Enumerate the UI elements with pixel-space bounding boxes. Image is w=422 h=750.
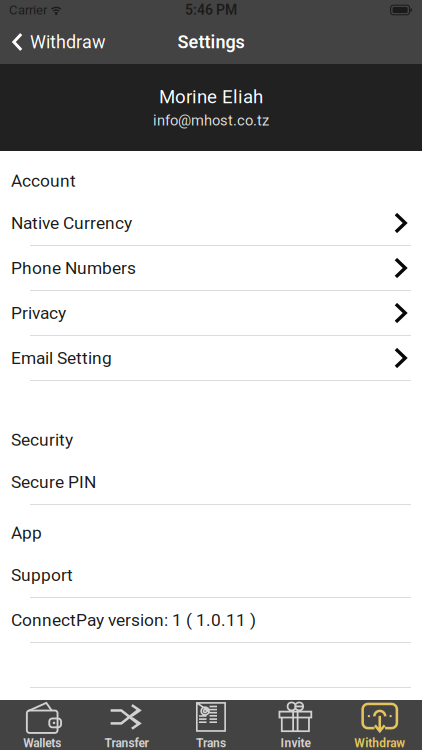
staticText: Withdraw: [30, 31, 106, 53]
button[interactable]: Privacy: [0, 291, 422, 336]
button[interactable]: Invite: [253, 700, 338, 750]
staticText: Settings: [177, 31, 244, 53]
staticText: Trans: [196, 736, 226, 750]
button[interactable]: ConnectPay version: 1 ( 1.0.11 ): [0, 598, 422, 643]
staticText: Security: [11, 430, 73, 450]
staticText: Morine Eliah: [159, 86, 263, 108]
staticText: ConnectPay version: 1 ( 1.0.11 ): [11, 610, 256, 630]
staticText: Invite: [280, 736, 310, 750]
staticText: Privacy: [11, 303, 66, 323]
staticText: info@mhost.co.tz: [153, 112, 269, 129]
button[interactable]: Secure PIN: [0, 460, 422, 505]
staticText: Transfer: [105, 736, 149, 750]
staticText: Carrier: [9, 2, 47, 18]
staticText: Withdraw: [354, 736, 405, 750]
button[interactable]: Native Currency: [0, 201, 422, 246]
staticText: Email Setting: [11, 348, 112, 368]
button[interactable]: Support: [0, 553, 422, 598]
staticText: Account: [11, 171, 76, 191]
staticText: 5:46 PM: [185, 2, 237, 18]
staticText: Phone Numbers: [11, 258, 136, 278]
staticText: Wallets: [23, 736, 61, 750]
button[interactable]: [0, 643, 422, 688]
staticText: Native Currency: [11, 213, 132, 233]
staticText: Secure PIN: [11, 472, 96, 492]
staticText: App: [11, 523, 42, 543]
button[interactable]: Phone Numbers: [0, 246, 422, 291]
button[interactable]: Email Setting: [0, 336, 422, 381]
button[interactable]: Withdraw: [338, 700, 422, 750]
button[interactable]: Trans: [169, 700, 253, 750]
staticText: Support: [11, 565, 73, 585]
button[interactable]: Withdraw: [0, 20, 114, 64]
button[interactable]: Wallets: [0, 700, 84, 750]
button[interactable]: Transfer: [84, 700, 169, 750]
